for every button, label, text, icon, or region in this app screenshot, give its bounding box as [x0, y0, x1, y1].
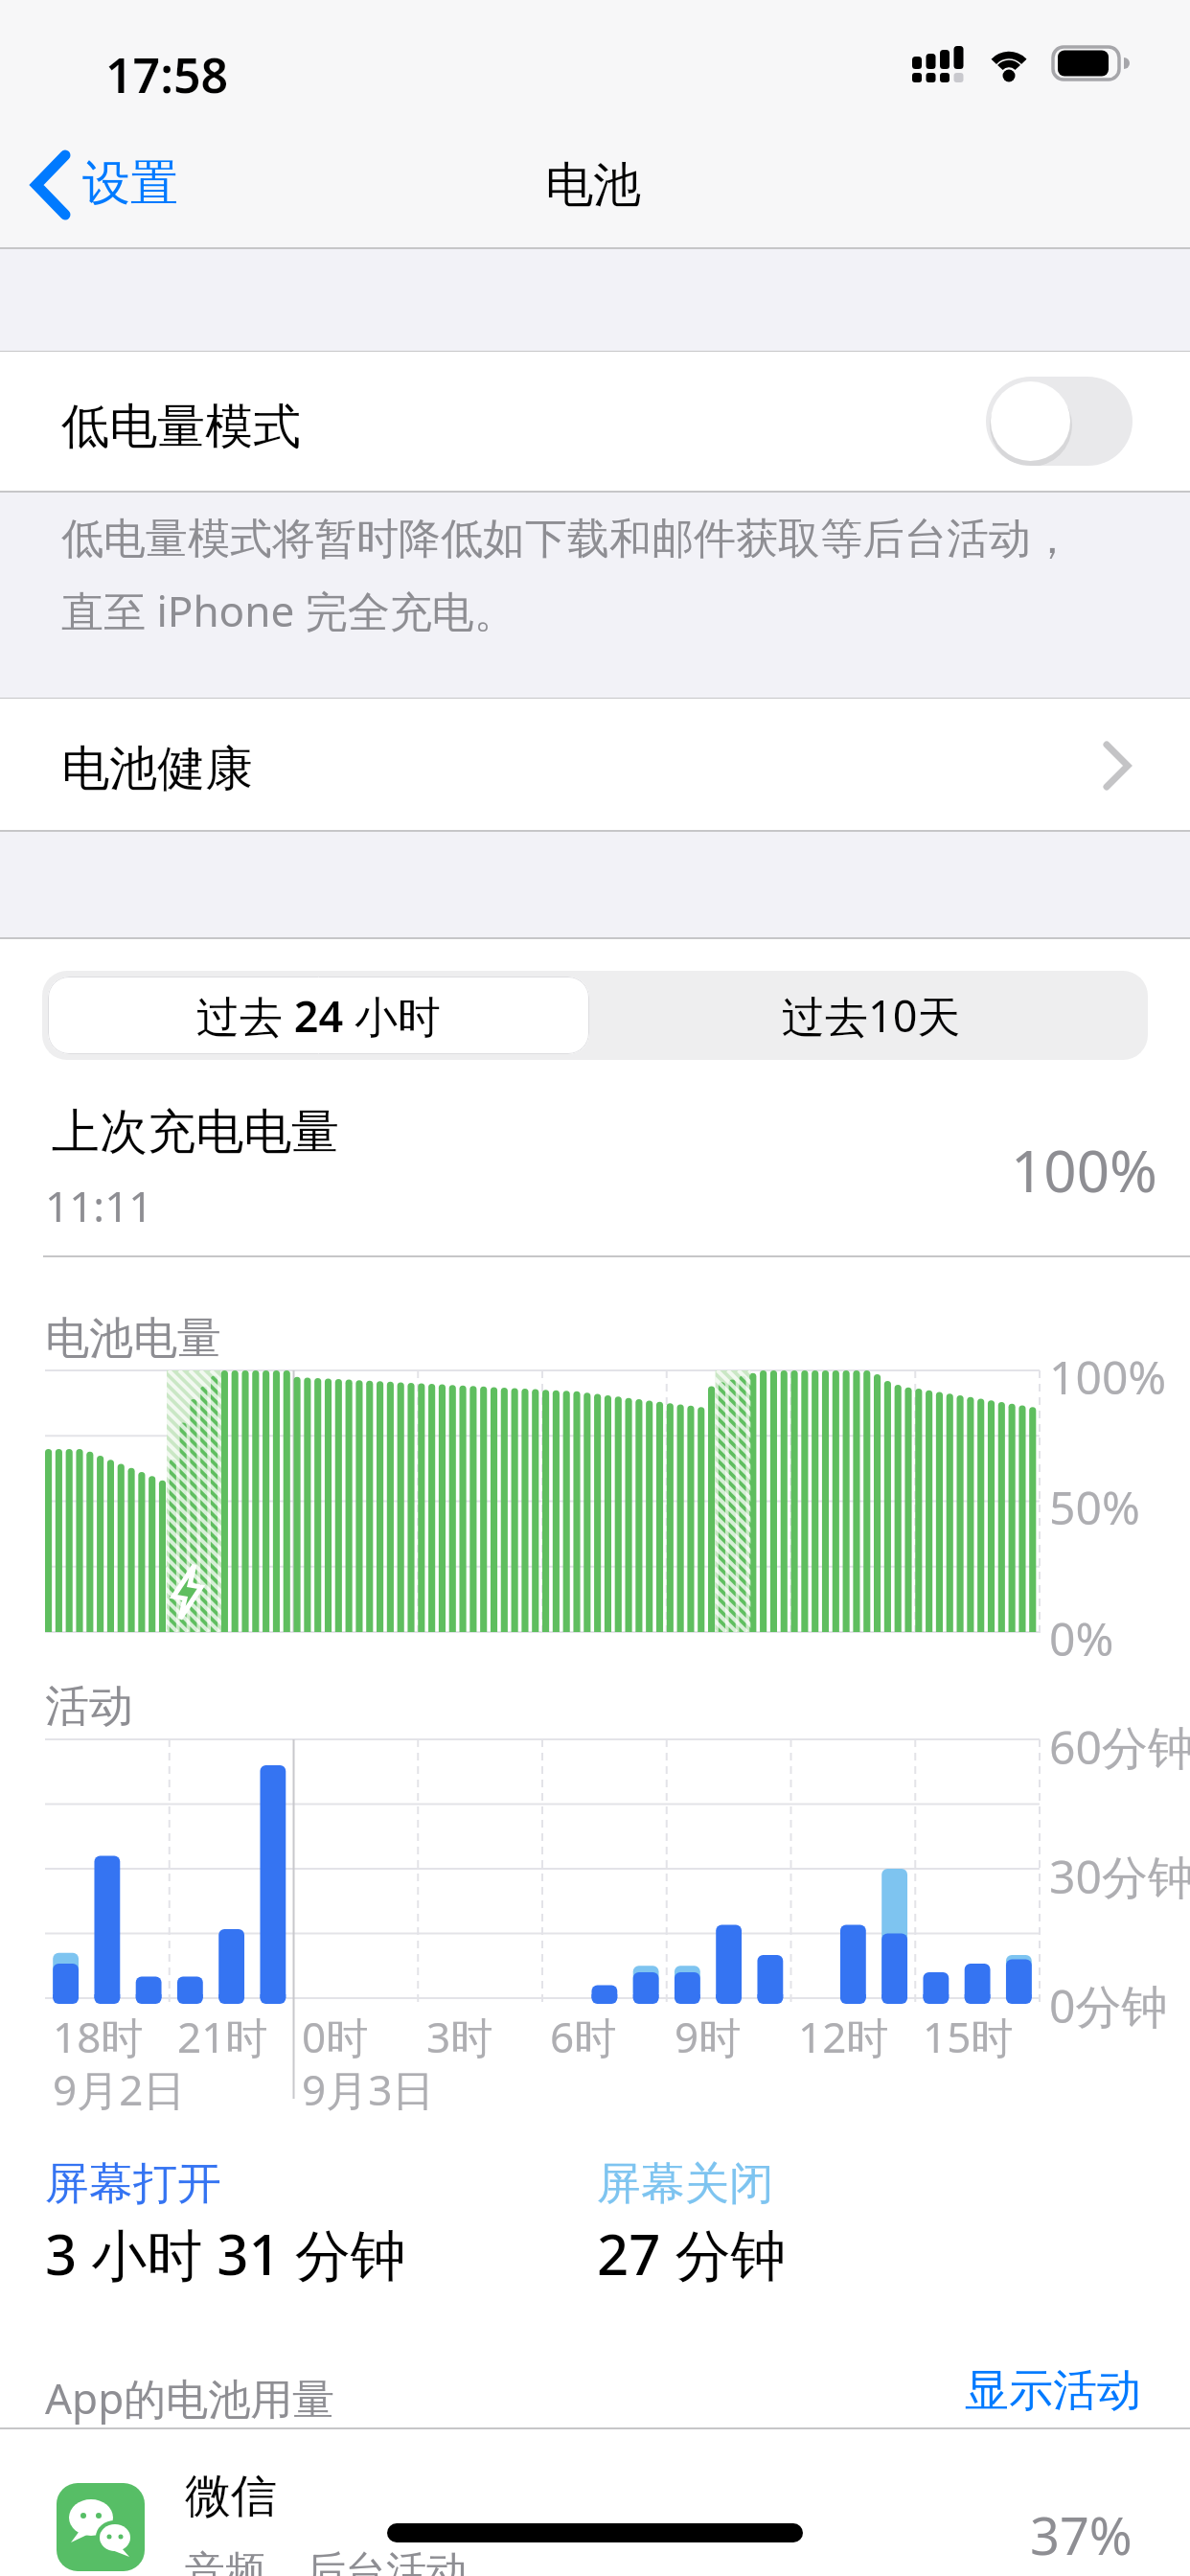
staticText: 屏幕关闭 [597, 2156, 773, 2212]
button[interactable]: 显示活动 [965, 2363, 1141, 2419]
staticText: 0分钟 [1049, 1974, 1168, 2037]
staticText: 低电量模式 [61, 397, 301, 457]
staticText: 17:58 [105, 42, 229, 107]
staticText: 27 分钟 [597, 2216, 787, 2291]
button[interactable] [986, 377, 1133, 466]
staticText: 21时 [177, 2008, 268, 2065]
staticText: 过去 24 小时 [196, 986, 441, 1045]
staticText: 9时 [675, 2008, 742, 2065]
staticText: 30分钟 [1049, 1845, 1190, 1908]
staticText: 显示活动 [965, 2363, 1141, 2419]
button[interactable]: 过去 24 小时 [48, 977, 589, 1054]
staticText: 上次充电电量 [52, 1102, 339, 1162]
staticText: 屏幕打开 [45, 2156, 221, 2212]
staticText: 电池健康 [61, 739, 253, 799]
staticText: 12时 [798, 2008, 889, 2065]
button[interactable]: 设置 [82, 153, 178, 214]
staticText: 3时 [426, 2008, 493, 2065]
staticText: 电池电量 [45, 1311, 221, 1367]
staticText: 电池 [545, 155, 641, 216]
staticText: 11:11 [45, 1177, 153, 1234]
staticText: 60分钟 [1049, 1715, 1190, 1779]
staticText: 6时 [550, 2008, 617, 2065]
staticText: 0时 [302, 2008, 369, 2065]
button[interactable]: 微信 [0, 2429, 1190, 2576]
button[interactable]: 电池健康 [0, 699, 1190, 830]
staticText: 9月2日 [53, 2060, 186, 2118]
staticText: 15时 [923, 2008, 1014, 2065]
staticText: 设置 [82, 153, 178, 214]
button[interactable]: 过去10天 [595, 971, 1148, 1060]
staticText: 37% [1030, 2499, 1133, 2570]
staticText: 音频，后台活动 [185, 2546, 467, 2576]
staticText: 50% [1049, 1476, 1140, 1538]
staticText: 100% [1049, 1345, 1167, 1408]
staticText: 9月3日 [302, 2060, 435, 2118]
button[interactable]: 低电量模式 [0, 352, 1190, 491]
staticText: 100% [1011, 1131, 1157, 1209]
staticText: 0% [1049, 1607, 1114, 1669]
staticText: 3 小时 31 分钟 [45, 2216, 406, 2291]
staticText: 直至 iPhone 完全充电。 [61, 582, 516, 639]
staticText: App的电池用量 [45, 2369, 335, 2426]
staticText: 过去10天 [782, 986, 961, 1045]
staticText: 18时 [53, 2008, 144, 2065]
staticText: 微信 [185, 2468, 277, 2525]
staticText: 活动 [45, 1679, 133, 1735]
staticText: 低电量模式将暂时降低如下载和邮件获取等后台活动， [61, 513, 1073, 565]
button[interactable] [29, 153, 82, 217]
